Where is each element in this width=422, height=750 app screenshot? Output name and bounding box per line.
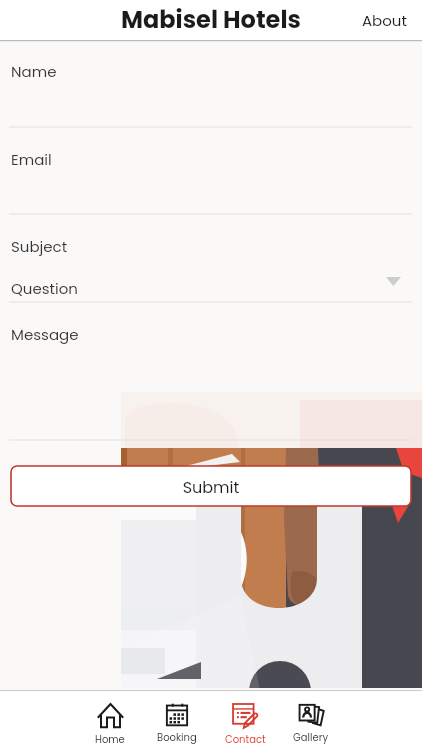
button[interactable]: Home: [82, 699, 138, 750]
button[interactable]: Contact: [217, 699, 273, 750]
staticText: Submit: [11, 476, 411, 498]
staticText: Message: [11, 324, 79, 345]
button[interactable]: Gallery: [283, 699, 339, 748]
button[interactable]: About: [348, 0, 422, 41]
staticText: Booking: [157, 730, 197, 744]
staticText: Email: [11, 149, 52, 170]
staticText: Mabisel Hotels: [121, 3, 301, 37]
other: Booking: [166, 703, 188, 726]
staticText: Gallery: [293, 730, 329, 744]
other: Gallery: [298, 703, 324, 726]
button[interactable]: Submit: [11, 466, 411, 506]
staticText: Question: [11, 278, 78, 299]
button[interactable]: Booking: [149, 699, 205, 748]
staticText: Contact: [225, 732, 266, 746]
staticText: Subject: [11, 236, 68, 257]
other: Contact: [232, 703, 258, 728]
staticText: Name: [11, 61, 57, 82]
other: Home: [98, 703, 123, 728]
staticText: About: [362, 10, 407, 31]
staticText: Home: [95, 732, 125, 746]
